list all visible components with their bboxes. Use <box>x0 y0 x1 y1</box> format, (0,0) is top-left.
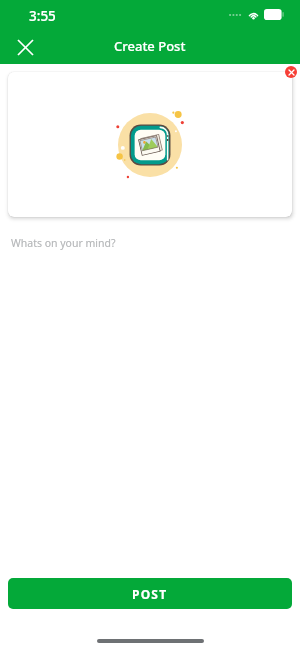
staticText: POST <box>132 586 168 602</box>
button[interactable]: Close <box>8 30 43 65</box>
button[interactable] <box>8 72 292 217</box>
staticText: Create Post <box>114 37 186 55</box>
button[interactable]: POST <box>8 578 292 609</box>
staticText: 3:55 <box>29 7 56 25</box>
staticText: Whats on your mind? <box>11 236 116 250</box>
button[interactable]: Remove image <box>285 66 297 78</box>
button[interactable]: Whats on your mind? <box>0 228 300 578</box>
